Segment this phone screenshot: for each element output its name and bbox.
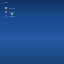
button[interactable]: Tab xyxy=(32,61,48,64)
button[interactable]: Tab xyxy=(48,61,64,64)
button[interactable] xyxy=(0,10,64,14)
button[interactable] xyxy=(0,14,64,18)
button[interactable]: Tab xyxy=(16,61,32,64)
button[interactable]: Tab xyxy=(0,61,16,64)
button[interactable]: Menu xyxy=(1,2,3,4)
button[interactable] xyxy=(0,6,64,10)
